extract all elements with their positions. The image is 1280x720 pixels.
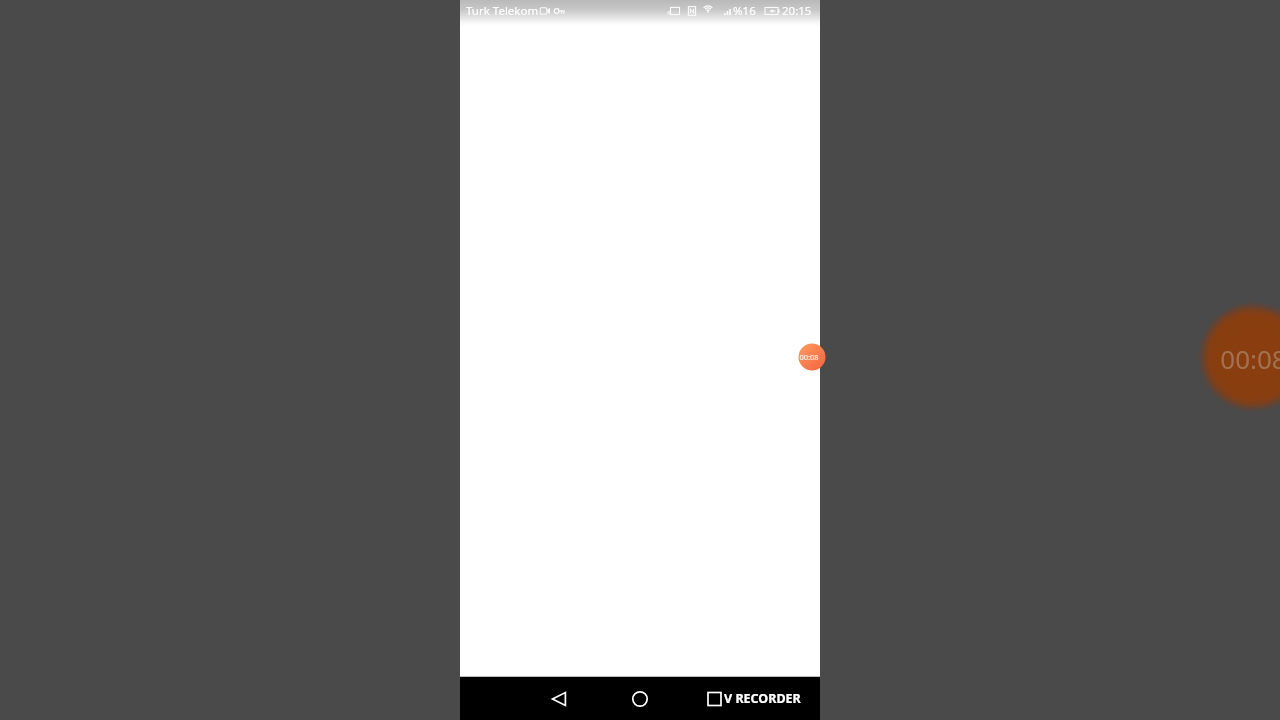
button[interactable]: Recording timer 00:08 bbox=[794, 344, 820, 370]
button[interactable]: Back bbox=[540, 677, 580, 720]
staticText: 20:15 bbox=[782, 3, 812, 19]
staticText: 00:08 bbox=[799, 352, 819, 362]
staticText: %16 bbox=[733, 3, 756, 19]
staticText: 00:08 bbox=[1220, 341, 1280, 373]
staticText: V RECORDER bbox=[724, 690, 801, 707]
staticText: Turk Telekom bbox=[466, 3, 539, 19]
button[interactable]: Home bbox=[620, 677, 660, 720]
button[interactable]: Recent apps bbox=[706, 677, 820, 720]
